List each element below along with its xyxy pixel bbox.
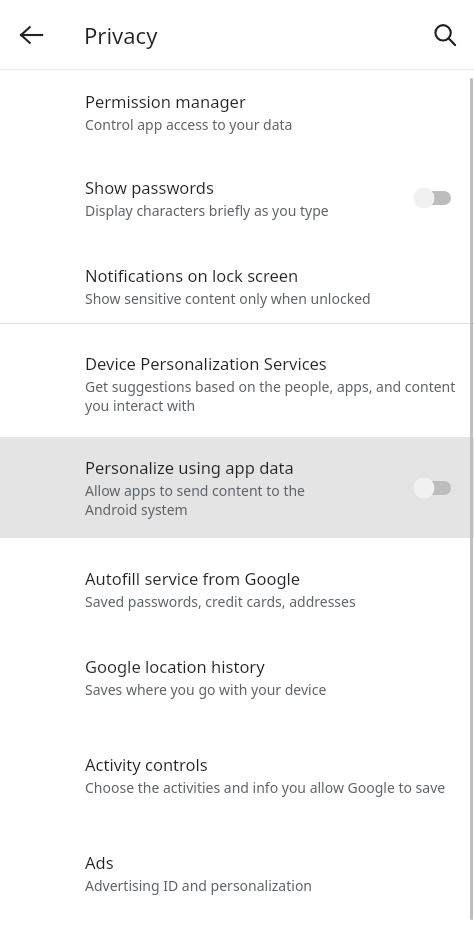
button[interactable]: Ads: [0, 835, 474, 911]
button[interactable]: Back: [7, 11, 55, 59]
staticText: Control app access to your data: [85, 115, 293, 134]
staticText: Activity controls: [85, 753, 208, 775]
staticText: Personalize using app data: [85, 456, 294, 478]
staticText: Show sensitive content only when unlocke…: [85, 289, 371, 308]
staticText: Show passwords: [85, 176, 214, 198]
staticText: Google location history: [85, 655, 265, 677]
button[interactable]: Autofill service from Google: [0, 551, 474, 627]
staticText: Allow apps to send content to the Androi…: [85, 481, 360, 519]
button[interactable]: Personalize using app data: [0, 437, 474, 538]
staticText: Privacy: [84, 20, 158, 50]
button[interactable]: Activity controls: [0, 726, 474, 824]
staticText: Permission manager: [85, 90, 246, 112]
staticText: Get suggestions based on the people, app…: [85, 377, 457, 415]
button[interactable]: Google location history: [0, 639, 474, 715]
button[interactable]: Notifications on lock screen: [0, 248, 474, 324]
staticText: Advertising ID and personalization: [85, 876, 313, 895]
staticText: Choose the activities and info you allow…: [85, 778, 446, 797]
staticText: Device Personalization Services: [85, 352, 327, 374]
button[interactable]: Device Personalization Services: [0, 334, 474, 432]
staticText: Saved passwords, credit cards, addresses: [85, 592, 356, 611]
staticText: Saves where you go with your device: [85, 680, 327, 699]
button[interactable]: Toggle Personalize using app data: [408, 472, 454, 504]
staticText: Notifications on lock screen: [85, 264, 299, 286]
button[interactable]: Toggle Show passwords: [408, 182, 454, 214]
button[interactable]: Search: [421, 11, 469, 59]
button[interactable]: Permission manager: [0, 74, 474, 150]
staticText: Ads: [85, 851, 114, 873]
staticText: Autofill service from Google: [85, 567, 301, 589]
button[interactable]: Show passwords: [0, 160, 474, 236]
staticText: Display characters briefly as you type: [85, 201, 329, 220]
